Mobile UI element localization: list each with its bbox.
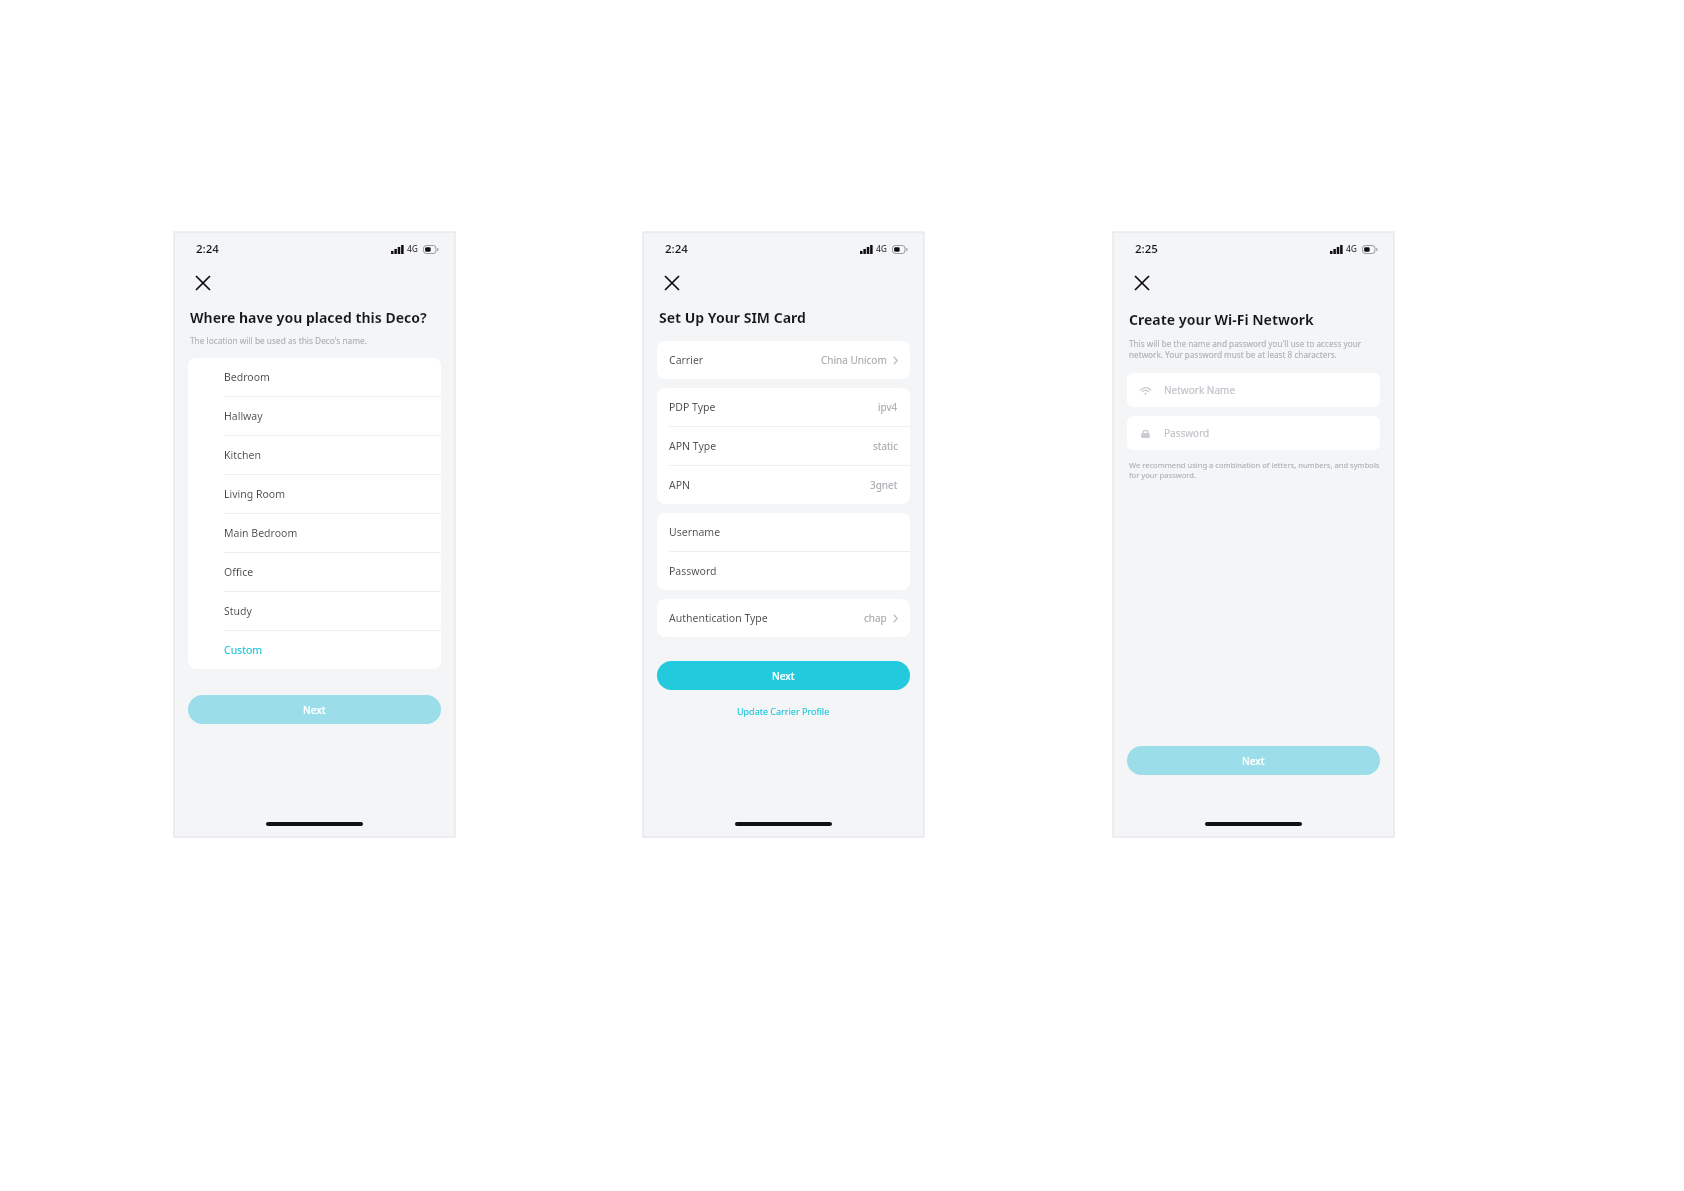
staticText: Update Carrier Profile xyxy=(737,705,830,717)
button[interactable]: Hallway xyxy=(188,396,441,435)
button[interactable]: Carrier xyxy=(657,341,910,379)
staticText: 3gnet xyxy=(870,478,898,492)
staticText: Password xyxy=(669,564,717,578)
staticText: Hallway xyxy=(224,409,263,423)
button[interactable]: Password xyxy=(657,551,910,590)
button[interactable]: Close xyxy=(1125,266,1159,300)
button[interactable]: Next xyxy=(1127,746,1380,775)
staticText: Carrier xyxy=(669,353,704,367)
staticText: PDP Type xyxy=(669,400,716,414)
button[interactable]: APN xyxy=(657,465,910,504)
staticText: Authentication Type xyxy=(669,611,768,625)
staticText: Kitchen xyxy=(224,448,261,462)
button[interactable]: Main Bedroom xyxy=(188,513,441,552)
staticText: Living Room xyxy=(224,487,285,501)
staticText: Next xyxy=(772,669,795,683)
button[interactable]: Custom xyxy=(188,630,441,669)
button[interactable]: Password xyxy=(1127,416,1380,450)
staticText: Create your Wi-Fi Network xyxy=(1129,310,1314,329)
button[interactable]: Bedroom xyxy=(188,358,441,396)
staticText: 4G xyxy=(876,243,888,255)
staticText: China Unicom xyxy=(821,353,887,367)
staticText: 2:25 xyxy=(1135,241,1158,257)
button[interactable]: Authentication Type xyxy=(657,599,910,637)
button[interactable]: Next xyxy=(657,661,910,690)
staticText: The location will be used as this Deco's… xyxy=(190,335,367,346)
staticText: chap xyxy=(864,611,887,625)
staticText: APN Type xyxy=(669,439,717,453)
staticText: Custom xyxy=(224,643,263,657)
staticText: Study xyxy=(224,604,252,618)
staticText: 2:24 xyxy=(196,241,219,257)
staticText: We recommend using a combination of lett… xyxy=(1129,460,1382,480)
button[interactable]: Office xyxy=(188,552,441,591)
staticText: Set Up Your SIM Card xyxy=(659,308,806,327)
button[interactable]: Study xyxy=(188,591,441,630)
button[interactable]: APN Type xyxy=(657,426,910,465)
staticText: Where have you placed this Deco? xyxy=(190,308,427,327)
staticText: This will be the name and password you'l… xyxy=(1129,338,1378,360)
staticText: Main Bedroom xyxy=(224,526,298,540)
button[interactable]: Network Name xyxy=(1127,373,1380,407)
staticText: static xyxy=(873,439,898,453)
staticText: Next xyxy=(1242,754,1265,768)
staticText: 4G xyxy=(407,243,419,255)
staticText: Network Name xyxy=(1164,383,1236,397)
staticText: Office xyxy=(224,565,254,579)
button[interactable]: Kitchen xyxy=(188,435,441,474)
staticText: Bedroom xyxy=(224,370,270,384)
staticText: APN xyxy=(669,478,691,492)
staticText: Username xyxy=(669,525,721,539)
button[interactable]: PDP Type xyxy=(657,388,910,426)
staticText: 4G xyxy=(1346,243,1358,255)
button[interactable]: Living Room xyxy=(188,474,441,513)
staticText: Next xyxy=(303,703,326,717)
staticText: ipv4 xyxy=(878,400,898,414)
button[interactable]: Close xyxy=(186,266,220,300)
staticText: Password xyxy=(1164,426,1210,440)
button[interactable]: Close xyxy=(655,266,689,300)
button[interactable]: Username xyxy=(657,513,910,551)
staticText: 2:24 xyxy=(665,241,688,257)
button[interactable]: Update Carrier Profile xyxy=(643,705,924,717)
button[interactable]: Next xyxy=(188,695,441,724)
